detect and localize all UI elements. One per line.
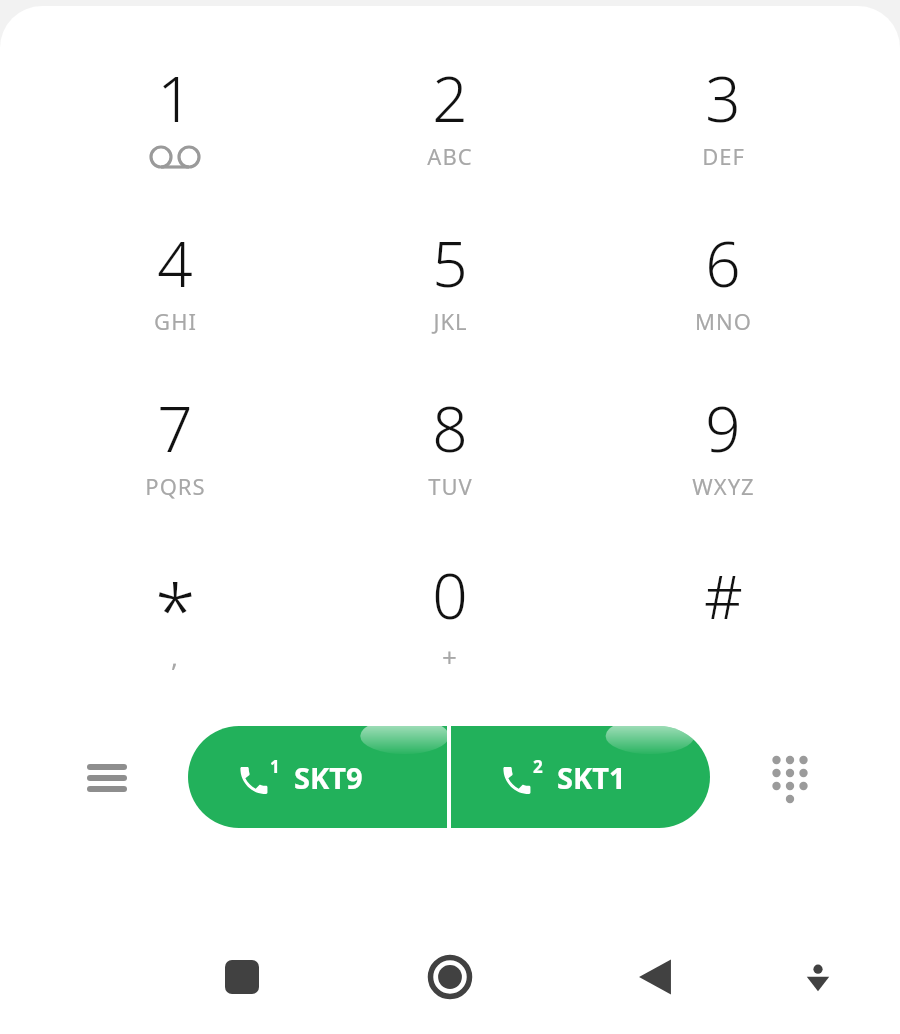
- button[interactable]: #: [598, 533, 848, 683]
- button[interactable]: 3: [598, 36, 848, 186]
- staticText: SKT1: [557, 758, 626, 797]
- button[interactable]: Recents: [200, 937, 284, 1017]
- staticText: 1: [270, 755, 280, 778]
- staticText: 7: [157, 386, 193, 470]
- button[interactable]: 6: [598, 201, 848, 351]
- button[interactable]: 2: [451, 726, 710, 828]
- staticText: *: [155, 559, 196, 660]
- staticText: GHI: [154, 306, 197, 336]
- button[interactable]: 4: [50, 201, 300, 351]
- staticText: +: [442, 639, 458, 674]
- button[interactable]: 8: [325, 366, 575, 516]
- button[interactable]: 0: [325, 533, 575, 683]
- staticText: 6: [705, 221, 741, 305]
- staticText: #: [704, 555, 743, 637]
- staticText: 8: [432, 386, 468, 470]
- staticText: SKT9: [294, 758, 363, 797]
- staticText: ,: [171, 639, 179, 674]
- staticText: 2: [533, 755, 543, 778]
- button[interactable]: 9: [598, 366, 848, 516]
- button[interactable]: Keypad: [755, 742, 825, 814]
- button[interactable]: 1: [188, 726, 447, 828]
- staticText: JKL: [433, 306, 468, 336]
- button[interactable]: 5: [325, 201, 575, 351]
- staticText: 1: [157, 56, 193, 140]
- staticText: MNO: [695, 306, 752, 336]
- button[interactable]: Home: [408, 937, 492, 1017]
- staticText: 5: [432, 221, 468, 305]
- button[interactable]: 1: [50, 36, 300, 186]
- staticText: 3: [705, 56, 741, 140]
- staticText: DEF: [702, 141, 745, 171]
- staticText: 9: [705, 386, 741, 470]
- button[interactable]: 7: [50, 366, 300, 516]
- button[interactable]: Back: [613, 937, 697, 1017]
- staticText: WXYZ: [692, 471, 755, 501]
- button[interactable]: *: [50, 533, 300, 683]
- button[interactable]: Hide keyboard: [778, 937, 858, 1017]
- staticText: 4: [157, 221, 193, 305]
- staticText: 0: [432, 553, 468, 637]
- button[interactable]: Menu: [72, 742, 142, 814]
- staticText: 2: [432, 56, 468, 140]
- staticText: ABC: [427, 141, 473, 171]
- staticText: PQRS: [145, 471, 206, 501]
- staticText: TUV: [428, 471, 473, 501]
- button[interactable]: 2: [325, 36, 575, 186]
